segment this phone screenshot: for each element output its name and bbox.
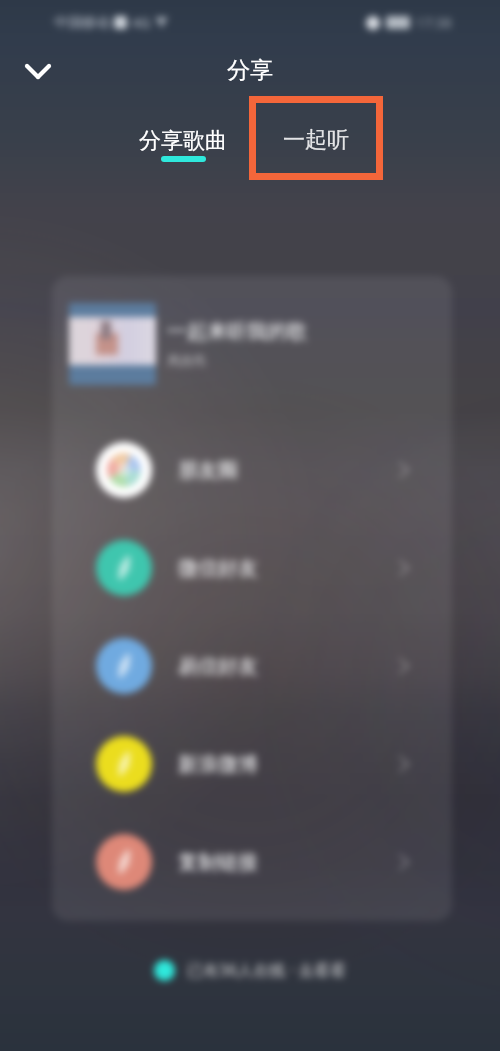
staticText: 一起听: [283, 126, 349, 154]
button[interactable]: 分享歌曲: [131, 127, 235, 162]
button[interactable]: Collapse: [14, 47, 62, 95]
staticText: 周杰伦: [167, 352, 206, 368]
button[interactable]: 新浪微博: [96, 715, 408, 813]
button[interactable]: 一起来听我的歌: [69, 303, 452, 421]
button[interactable]: 已有36人在线 · 去看看: [0, 959, 500, 981]
staticText: 易信好友: [178, 654, 258, 679]
button[interactable]: 朋友圈: [96, 421, 408, 519]
staticText: 一起来听我的歌: [167, 319, 307, 344]
button[interactable]: 易信好友: [96, 617, 408, 715]
button[interactable]: 复制链接: [96, 813, 408, 911]
staticText: 新浪微博: [178, 752, 258, 777]
staticText: 复制链接: [178, 850, 258, 875]
staticText: 中国移动: [54, 14, 110, 32]
staticText: 17:38: [416, 13, 452, 32]
staticText: 微信好友: [178, 556, 258, 581]
staticText: 分享: [227, 56, 273, 85]
staticText: 朋友圈: [178, 458, 238, 483]
staticText: 已有36人在线 · 去看看: [187, 959, 346, 981]
staticText: 分享歌曲: [139, 127, 227, 155]
button[interactable]: 微信好友: [96, 519, 408, 617]
button[interactable]: 一起听: [249, 96, 383, 180]
staticText: 4G: [132, 13, 151, 32]
